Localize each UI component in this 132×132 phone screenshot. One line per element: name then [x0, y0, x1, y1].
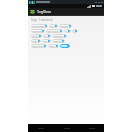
- other: Remove tag: [45, 25, 47, 27]
- button[interactable]: Remove tag: [60, 44, 70, 48]
- button[interactable]: Remove tag: [31, 39, 41, 43]
- button[interactable]: TagView: [28, 8, 104, 15]
- button[interactable]: Remove tag: [31, 44, 47, 48]
- other: Remove tag: [44, 45, 46, 47]
- button[interactable]: Remove tag: [31, 24, 48, 28]
- other: Remove tag: [38, 40, 40, 42]
- other: Remove tag: [60, 30, 62, 32]
- staticText: TagView: [37, 9, 51, 14]
- button[interactable]: Remove tag: [48, 44, 59, 48]
- staticText: Tags: [31, 18, 37, 22]
- button[interactable]: Back: [28, 124, 54, 132]
- other: Remove tag: [68, 30, 70, 32]
- button[interactable]: Home: [54, 124, 79, 132]
- button[interactable]: Remove tag: [42, 39, 51, 43]
- other: Remove tag: [64, 35, 66, 37]
- other: Remove tag: [55, 25, 57, 27]
- button[interactable]: Remove tag: [31, 29, 45, 33]
- other: Remove tag: [39, 35, 41, 37]
- other: Remove tag: [62, 40, 64, 42]
- other: Remove tag: [69, 25, 71, 27]
- other: Remove tag: [48, 35, 50, 37]
- other: Remove tag: [75, 30, 77, 32]
- button[interactable]: Remove tag: [52, 39, 65, 43]
- other: Remove tag: [42, 30, 44, 32]
- button[interactable]: Remove tag: [46, 29, 63, 33]
- button[interactable]: Remove tag: [52, 34, 67, 38]
- staticText: ( selected ): [39, 18, 53, 22]
- button[interactable]: Remove tag: [49, 24, 58, 28]
- other: Remove tag: [48, 40, 50, 42]
- other: Remove tag: [56, 45, 58, 47]
- button[interactable]: Remove tag: [64, 29, 71, 33]
- button[interactable]: Remove tag: [59, 24, 72, 28]
- button[interactable]: Remove tag: [43, 34, 51, 38]
- button[interactable]: Remove tag: [31, 34, 42, 38]
- button[interactable]: Remove tag: [72, 29, 78, 33]
- button[interactable]: Recents: [79, 124, 104, 132]
